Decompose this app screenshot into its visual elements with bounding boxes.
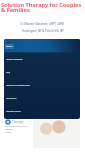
staticText: FAQ: [6, 71, 10, 74]
staticText: Therapy: [12, 120, 24, 124]
button[interactable]: HOME: [4, 39, 80, 52]
button[interactable]: ABOUT MICHELE: [4, 52, 80, 65]
staticText: Huntington, NY & Forest Hills, NY: [22, 29, 64, 33]
button[interactable]: FAQ: [4, 65, 80, 78]
staticText: PsychologyToday.com: [5, 125, 28, 128]
staticText: Listed: [5, 131, 12, 134]
staticText: Solution Therapy for Couples: [1, 1, 82, 9]
button[interactable]: HELPFUL INFORMATION: [4, 78, 80, 91]
staticText: ABOUT MICHELE: [6, 58, 23, 61]
staticText: Dr. Marcele Glassman, LMFT, LMHC: [20, 22, 65, 26]
staticText: Verified: [5, 128, 13, 131]
staticText: HOME: [6, 45, 13, 48]
button[interactable]: CONTACTS: [4, 91, 80, 104]
staticText: HELPFUL INFORMATION: [6, 84, 30, 87]
staticText: CONTACTS: [6, 97, 17, 100]
staticText: TESTIMONIALS: [6, 110, 21, 113]
staticText: & Families: [1, 6, 30, 14]
button[interactable]: TESTIMONIALS: [4, 104, 80, 117]
